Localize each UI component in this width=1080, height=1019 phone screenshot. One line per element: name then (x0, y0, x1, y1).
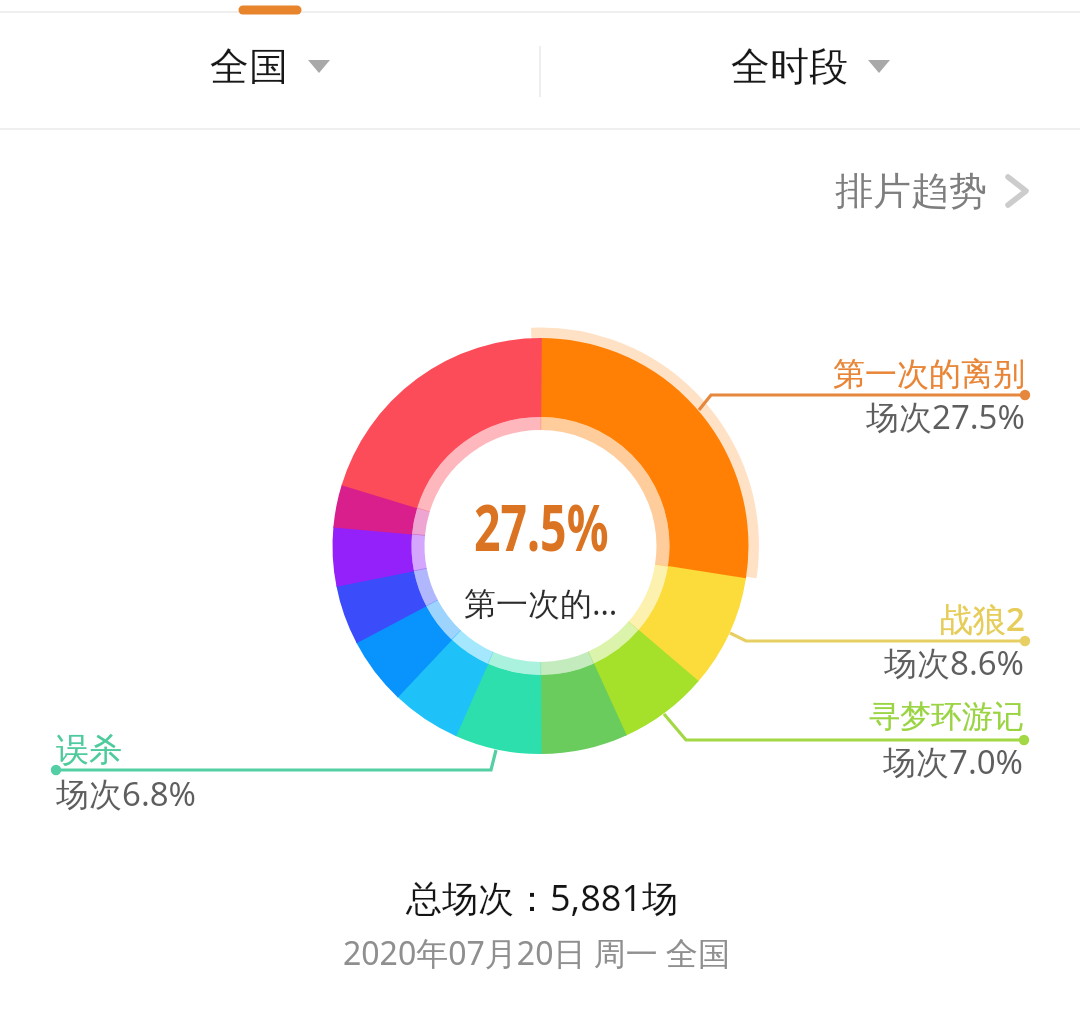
button[interactable]: 排片趋势 (823, 155, 1041, 227)
other: 展开选项 (308, 60, 330, 73)
button[interactable]: 全时段 (650, 21, 970, 111)
button[interactable]: 寻梦环游记 (869, 697, 1024, 784)
staticText: 27.5% (474, 483, 609, 570)
staticText: 2020年07月20日 周一 全国 (343, 931, 731, 975)
button[interactable]: 全国 (110, 21, 430, 111)
staticText: 全国 (210, 42, 288, 91)
staticText: 场次8.6% (884, 640, 1025, 685)
button[interactable]: 战狼2 (884, 596, 1025, 685)
staticText: 全时段 (731, 42, 848, 91)
staticText: 第一次的… (464, 581, 618, 625)
staticText: 第一次的离别 (833, 354, 1025, 394)
staticText: 误杀 (56, 729, 122, 771)
button[interactable]: 误杀 (56, 725, 206, 815)
staticText: 场次27.5% (866, 394, 1025, 439)
staticText: 寻梦环游记 (869, 697, 1024, 736)
staticText: 总场次：5,881场 (406, 873, 679, 922)
staticText: 排片趋势 (835, 167, 987, 215)
staticText: 场次7.0% (883, 739, 1024, 784)
staticText: 战狼2 (940, 596, 1025, 641)
staticText: 场次6.8% (56, 771, 197, 816)
button[interactable]: 第一次的离别 (833, 354, 1025, 439)
other: 展开选项 (868, 60, 890, 73)
